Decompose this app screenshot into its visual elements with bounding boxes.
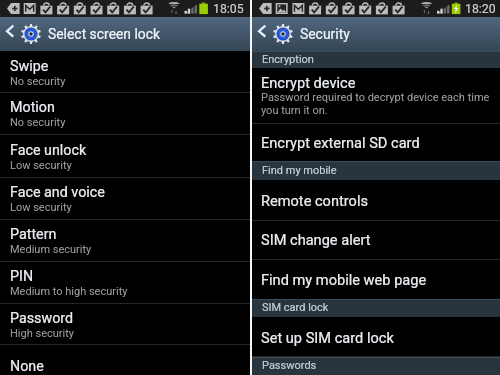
staticText: Password required to decrypt device each… [261,91,500,117]
staticText: High security [10,327,75,340]
staticText: SIM card lock [262,301,329,314]
staticText: Face unlock [10,142,87,159]
staticText: Security [300,26,350,42]
button[interactable]: Back [0,17,20,51]
staticText: Swipe [10,58,49,75]
button[interactable]: Back [252,17,272,51]
staticText: Pattern [10,226,57,243]
button[interactable]: Motion [0,92,250,134]
staticText: Password [10,310,74,327]
staticText: None [10,358,44,375]
staticText: Passwords [262,359,317,372]
staticText: Motion [10,99,55,116]
staticText: Find my mobile web page [261,271,427,288]
button[interactable]: Remote controls [252,180,500,220]
staticText: Low security [10,159,72,172]
staticText: 18:20 [465,2,496,16]
staticText: Face and voice [10,184,105,201]
staticText: Select screen lock [48,26,161,42]
button[interactable]: Pattern [0,219,250,261]
staticText: Remote controls [261,192,368,209]
staticText: Encryption [262,53,314,66]
button[interactable]: None [0,344,250,375]
staticText: No security [10,116,66,129]
staticText: Medium security [10,243,92,256]
button[interactable]: Find my mobile web page [252,259,500,299]
button[interactable]: SIM change alert [252,220,500,259]
staticText: Medium to high security [10,285,128,298]
button[interactable]: Encrypt external SD card [252,123,500,162]
button[interactable]: Set up SIM card lock [252,317,500,357]
button[interactable]: PIN [0,261,250,303]
staticText: Encrypt device [261,74,356,91]
staticText: Encrypt external SD card [261,134,420,151]
button[interactable]: Swipe [0,51,250,92]
button[interactable]: Face and voice [0,177,250,219]
staticText: 18:05 [213,2,244,16]
button[interactable]: Encrypt device [252,68,500,123]
staticText: SIM change alert [261,231,371,248]
staticText: Find my mobile [262,164,337,177]
staticText: Set up SIM card lock [261,329,394,346]
staticText: No security [10,75,66,88]
staticText: Low security [10,201,72,214]
staticText: PIN [10,268,34,285]
button[interactable]: Face unlock [0,135,250,177]
button[interactable]: Password [0,303,250,345]
